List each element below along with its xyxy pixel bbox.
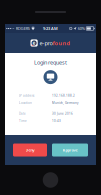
staticText: ROGERS: [16, 26, 30, 31]
staticText: Time: [19, 119, 27, 123]
staticText: Login request: [34, 58, 67, 66]
staticText: found: [52, 39, 70, 47]
staticText: 192.168.188.2: [52, 94, 75, 98]
staticText: Deny: [25, 147, 34, 153]
staticText: Location: [19, 101, 32, 105]
button[interactable]: Approve: [52, 143, 88, 156]
staticText: 9:23 AM: [43, 26, 58, 31]
staticText: e-pro: [39, 39, 52, 47]
staticText: 30 June 2016: [52, 112, 73, 116]
staticText: e: [33, 40, 36, 46]
staticText: Approve: [62, 147, 77, 153]
staticText: Date: [19, 112, 26, 116]
staticText: 60%: [78, 26, 85, 31]
staticText: IP address: [19, 94, 34, 98]
button[interactable]: Deny: [13, 143, 47, 156]
staticText: Munich, Germany: [52, 101, 78, 105]
staticText: 10:43: [52, 119, 61, 123]
